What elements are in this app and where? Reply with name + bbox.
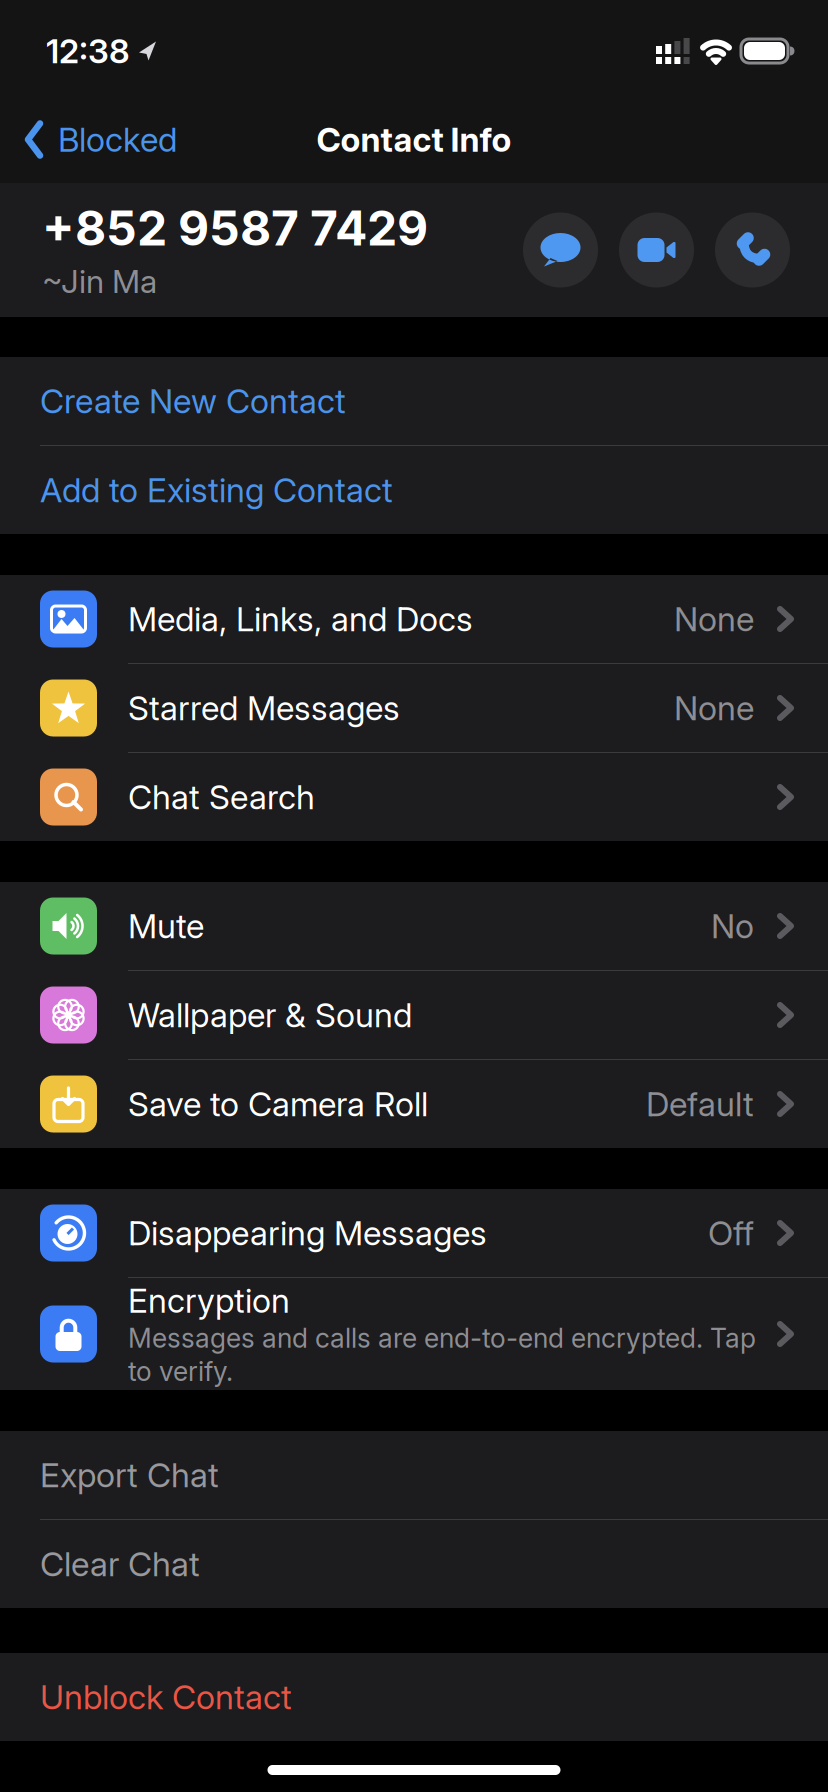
staticText: Media, Links, and Docs <box>128 599 473 639</box>
button[interactable]: Unblock Contact <box>0 1653 828 1741</box>
button[interactable]: Starred Messages <box>0 664 828 752</box>
staticText: 12:38 <box>46 31 130 71</box>
staticText: None <box>674 688 754 728</box>
button[interactable]: Disappearing Messages <box>0 1189 828 1277</box>
button[interactable]: Add to Existing Contact <box>0 446 828 534</box>
staticText: to verify. <box>128 1356 233 1387</box>
staticText: None <box>674 599 754 639</box>
staticText: Messages and calls are end-to-end encryp… <box>128 1322 756 1354</box>
staticText: Save to Camera Roll <box>128 1084 428 1124</box>
button[interactable]: Wallpaper & Sound <box>0 971 828 1059</box>
button[interactable]: Create New Contact <box>0 357 828 445</box>
staticText: Add to Existing Contact <box>40 470 393 510</box>
staticText: Unblock Contact <box>40 1677 292 1717</box>
staticText: Clear Chat <box>40 1544 200 1584</box>
staticText: Off <box>708 1213 754 1253</box>
button[interactable]: Chat Search <box>0 753 828 841</box>
button[interactable]: Call <box>715 212 790 287</box>
staticText: Create New Contact <box>40 381 346 421</box>
staticText: No <box>711 906 754 946</box>
staticText: ~Jin Ma <box>42 262 157 300</box>
staticText: Starred Messages <box>128 688 400 728</box>
staticText: Disappearing Messages <box>128 1213 487 1253</box>
button[interactable]: Back to Blocked <box>25 120 177 159</box>
staticText: Blocked <box>58 120 177 159</box>
staticText: +852 9587 7429 <box>42 200 428 256</box>
staticText: Contact Info <box>316 120 511 159</box>
staticText: Mute <box>128 906 204 946</box>
staticText: Chat Search <box>128 777 315 817</box>
staticText: Export Chat <box>40 1455 219 1495</box>
staticText: Default <box>646 1084 754 1124</box>
staticText: Wallpaper & Sound <box>128 995 412 1035</box>
staticText: Encryption <box>128 1281 290 1320</box>
button[interactable]: Export Chat <box>0 1431 828 1519</box>
button[interactable]: Mute <box>0 882 828 970</box>
button[interactable]: Save to Camera Roll <box>0 1060 828 1148</box>
button[interactable]: Media, Links, and Docs <box>0 575 828 663</box>
button[interactable]: Video Call <box>619 212 694 287</box>
button[interactable]: Clear Chat <box>0 1520 828 1608</box>
button[interactable]: Message <box>523 212 598 287</box>
button[interactable]: Encryption <box>0 1278 828 1390</box>
